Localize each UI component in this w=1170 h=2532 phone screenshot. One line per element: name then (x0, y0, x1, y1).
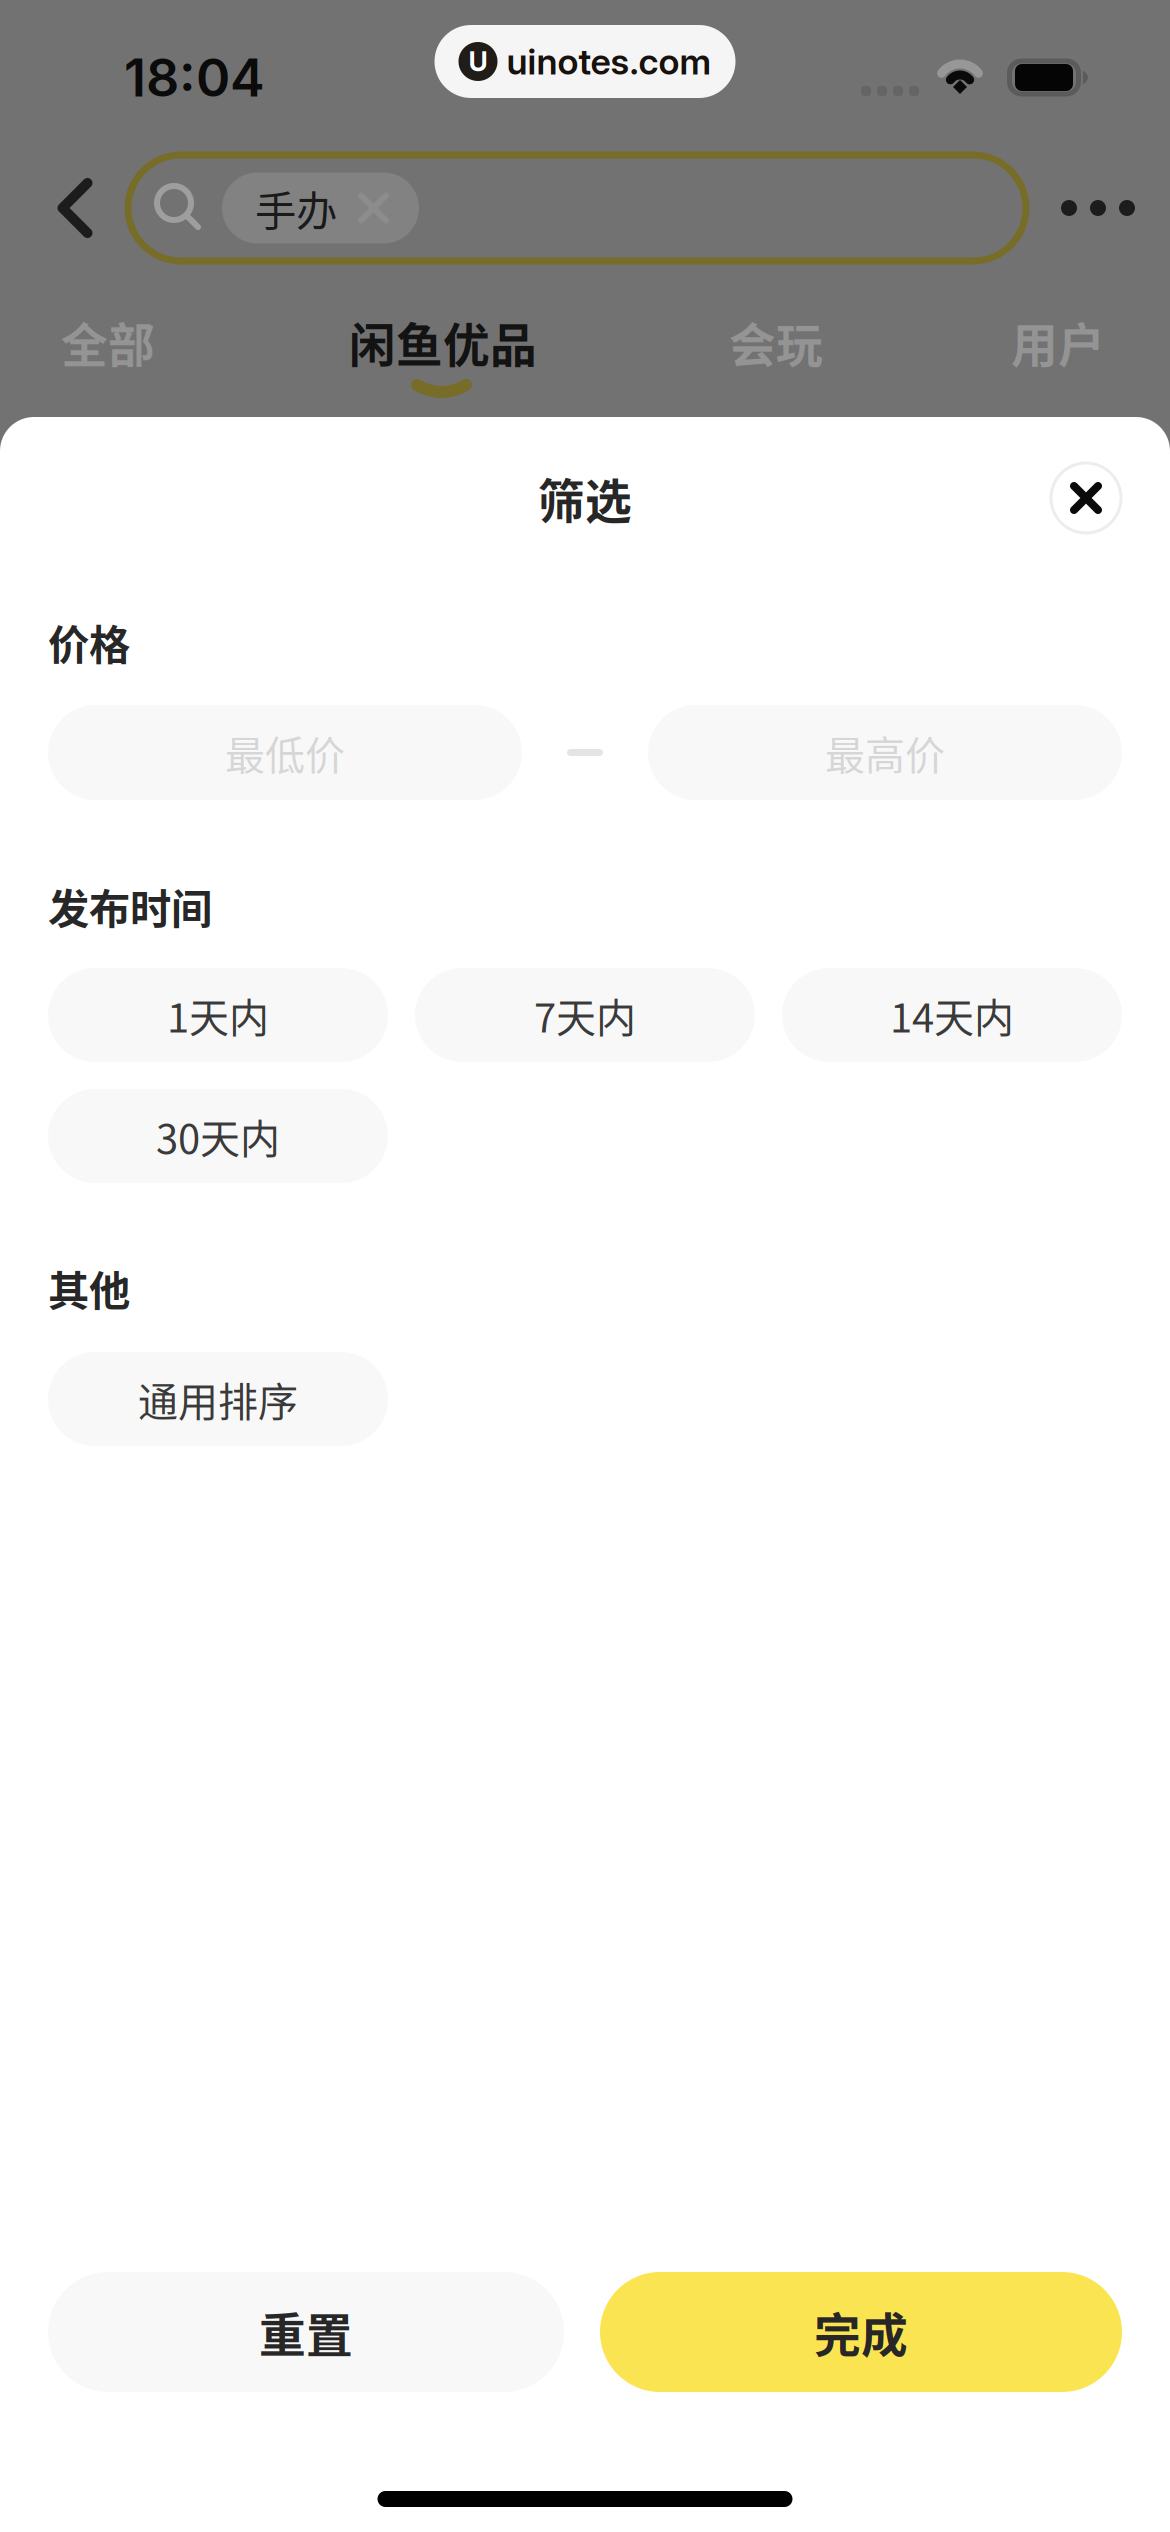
staticText: 最高价 (825, 723, 945, 781)
staticText: uinotes.com (506, 40, 711, 83)
button[interactable]: Back (0, 155, 128, 261)
button[interactable]: 全部 (61, 306, 155, 378)
staticText: 1天内 (167, 986, 269, 1044)
button[interactable]: 通用排序 (48, 1352, 388, 1446)
staticText: 其他 (48, 1258, 130, 1318)
staticText: 通用排序 (138, 1370, 298, 1428)
button[interactable]: 用户 (1011, 306, 1105, 378)
button[interactable]: 30天内 (48, 1089, 388, 1183)
staticText: 会玩 (729, 308, 823, 376)
staticText: 18:04 (124, 46, 265, 109)
button[interactable]: 会玩 (729, 306, 823, 378)
staticText: 14天内 (890, 986, 1014, 1044)
staticText: 重置 (259, 2298, 353, 2366)
button[interactable]: Close (1031, 458, 1141, 538)
button[interactable]: 最低价 (48, 705, 522, 800)
button[interactable]: More (1026, 155, 1170, 261)
staticText: 最低价 (225, 723, 345, 781)
staticText: U (468, 45, 487, 78)
button[interactable]: 完成 (600, 2272, 1122, 2392)
button[interactable]: 闲鱼优品 (349, 306, 537, 378)
staticText: 价格 (48, 612, 130, 672)
staticText: 用户 (1011, 308, 1105, 376)
staticText: 完成 (814, 2298, 908, 2366)
button[interactable]: 14天内 (782, 968, 1122, 1062)
button[interactable]: 重置 (48, 2272, 564, 2392)
staticText: 手办 (255, 178, 337, 238)
staticText: 发布时间 (48, 876, 212, 936)
button[interactable]: 1天内 (48, 968, 388, 1062)
staticText: 全部 (61, 308, 155, 376)
button[interactable]: 最高价 (648, 705, 1122, 800)
staticText: 闲鱼优品 (349, 308, 537, 376)
button[interactable]: 7天内 (415, 968, 755, 1062)
staticText: 筛选 (538, 464, 632, 532)
staticText: 7天内 (534, 986, 636, 1044)
staticText: 30天内 (156, 1107, 280, 1165)
